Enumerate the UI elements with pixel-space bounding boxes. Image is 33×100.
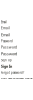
staticText: Sign In bbox=[1, 64, 12, 69]
staticText: Password bbox=[1, 39, 13, 43]
staticText: Password bbox=[1, 45, 17, 49]
staticText: Sign Up bbox=[1, 58, 12, 62]
staticText: Email bbox=[1, 26, 10, 30]
staticText: Password bbox=[1, 51, 17, 56]
staticText: Forgot password? bbox=[1, 71, 24, 74]
staticText: Email bbox=[1, 20, 7, 24]
staticText: Don't have an account? Sign up bbox=[1, 76, 32, 80]
staticText: Email bbox=[1, 32, 10, 37]
